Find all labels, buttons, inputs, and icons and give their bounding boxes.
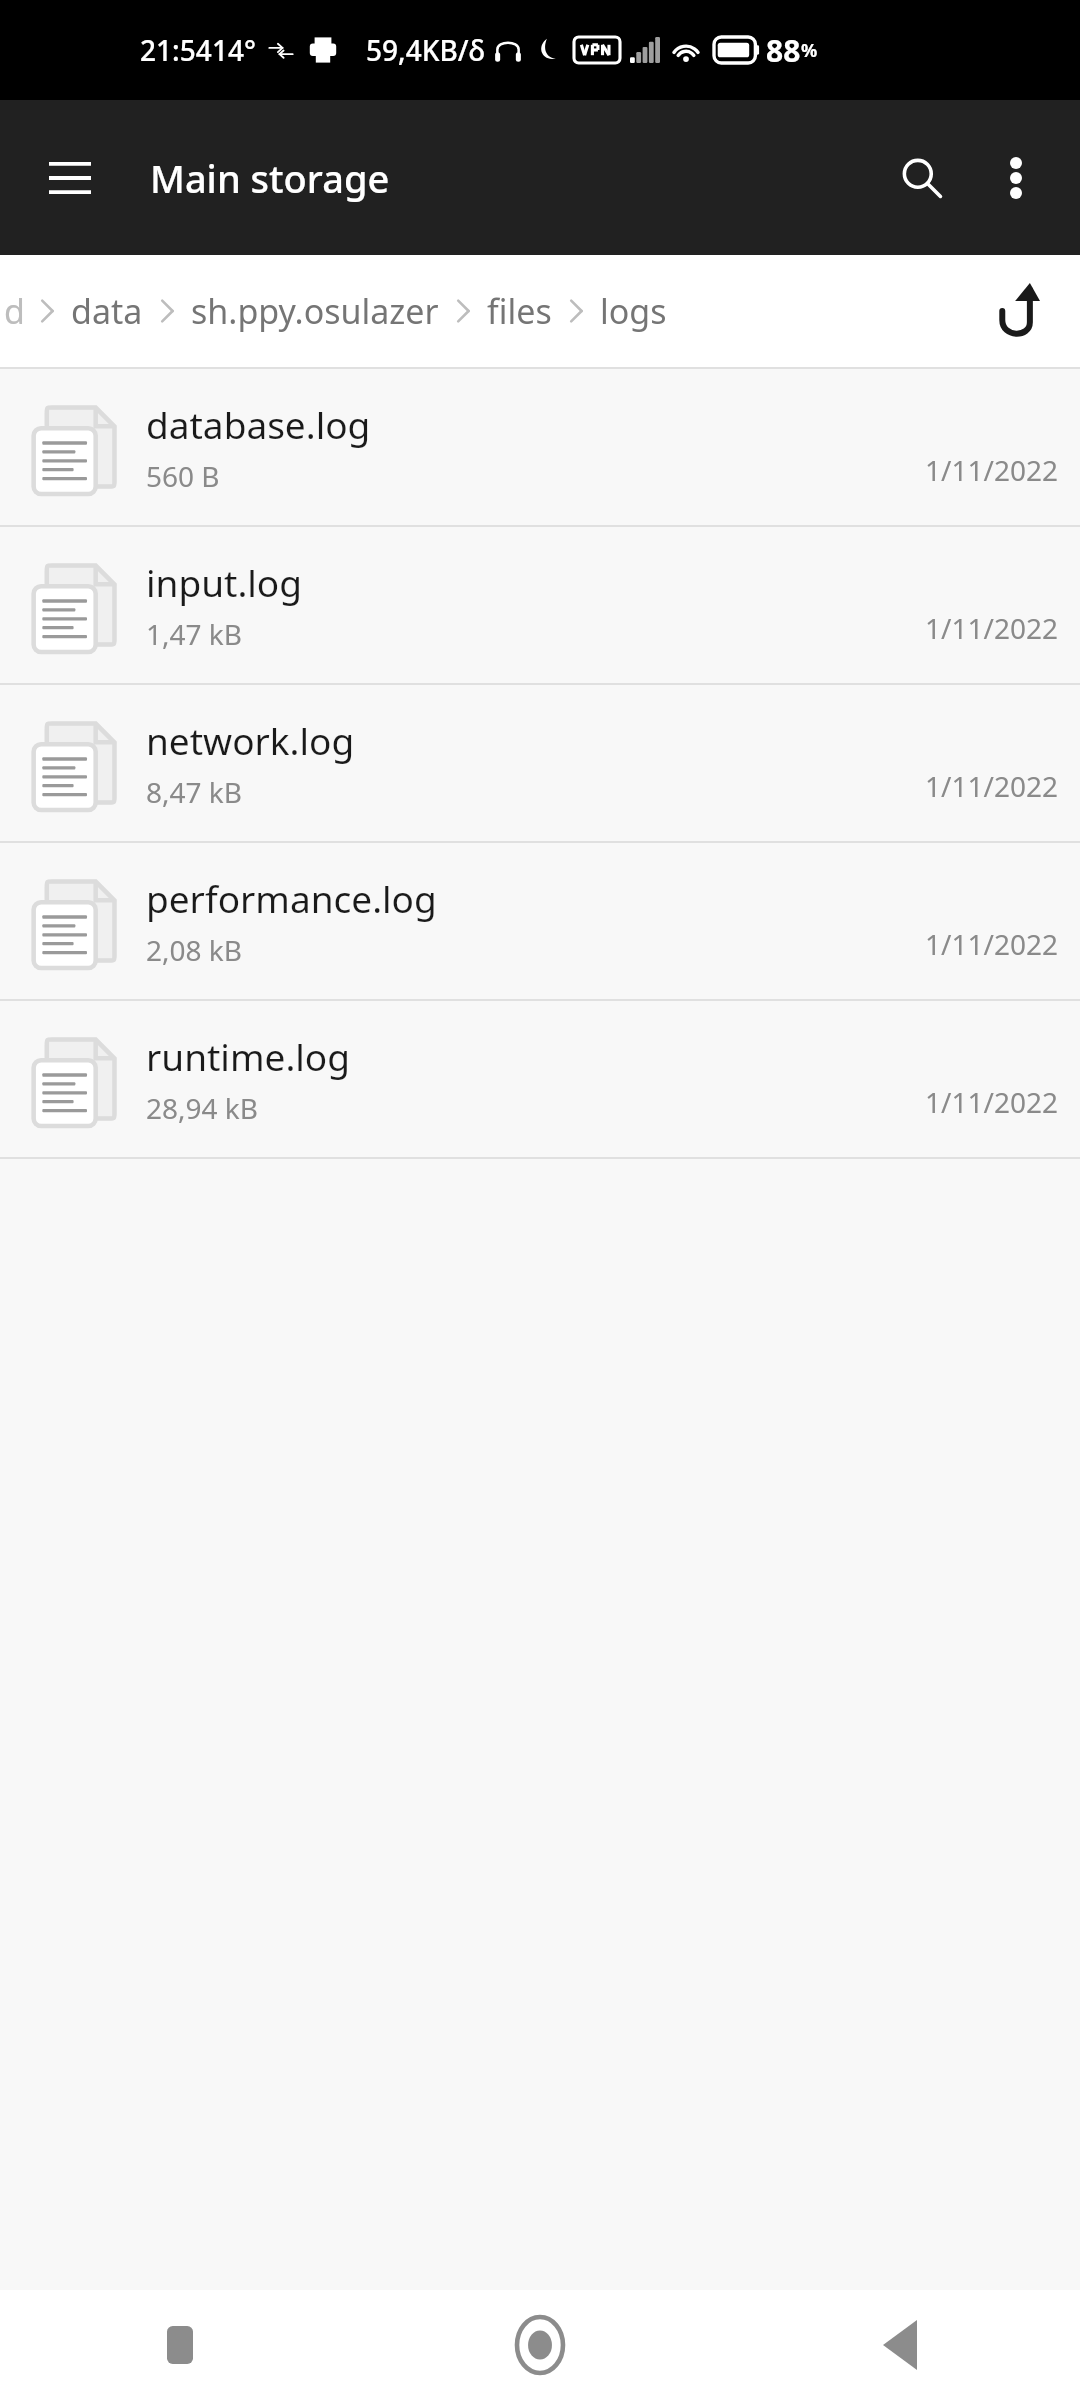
button[interactable]: logs <box>598 288 669 334</box>
staticText: 8,47 kB <box>146 773 242 811</box>
button[interactable]: Home <box>360 2290 720 2400</box>
button[interactable]: runtime.log <box>0 1001 1080 1157</box>
staticText: performance.log <box>146 873 437 923</box>
staticText: 88 <box>766 30 801 71</box>
button[interactable]: Go up one folder <box>974 268 1060 354</box>
staticText: input.log <box>146 557 302 607</box>
button[interactable]: Recent apps <box>0 2290 360 2400</box>
staticText: runtime.log <box>146 1031 350 1081</box>
staticText: 560 B <box>146 457 220 495</box>
staticText: 1/11/2022 <box>925 609 1058 647</box>
button[interactable]: input.log <box>0 527 1080 683</box>
button[interactable]: More options <box>970 132 1062 224</box>
staticText: database.log <box>146 399 371 449</box>
button[interactable]: Search <box>874 130 970 226</box>
button[interactable]: network.log <box>0 685 1080 841</box>
staticText: Main storage <box>150 152 390 204</box>
button[interactable]: data <box>69 288 145 334</box>
staticText: 1,47 kB <box>146 615 242 653</box>
staticText: 21:54 <box>140 31 212 69</box>
staticText: 59,4KB/δ <box>366 31 486 69</box>
button[interactable]: database.log <box>0 369 1080 525</box>
staticText: 1/11/2022 <box>925 1083 1058 1121</box>
button[interactable]: Back <box>720 2290 1080 2400</box>
staticText: 28,94 kB <box>146 1089 259 1127</box>
staticText: network.log <box>146 715 355 765</box>
staticText: 1/11/2022 <box>925 767 1058 805</box>
staticText: d <box>4 288 25 334</box>
staticText: % <box>801 38 818 63</box>
staticText: 14° <box>212 31 256 69</box>
staticText: 1/11/2022 <box>925 451 1058 489</box>
button[interactable]: files <box>485 288 554 334</box>
button[interactable]: performance.log <box>0 843 1080 999</box>
button[interactable]: sh.ppy.osulazer <box>189 288 441 334</box>
staticText: 1/11/2022 <box>925 925 1058 963</box>
staticText: 2,08 kB <box>146 931 242 969</box>
button[interactable]: Open navigation menu <box>28 136 112 220</box>
